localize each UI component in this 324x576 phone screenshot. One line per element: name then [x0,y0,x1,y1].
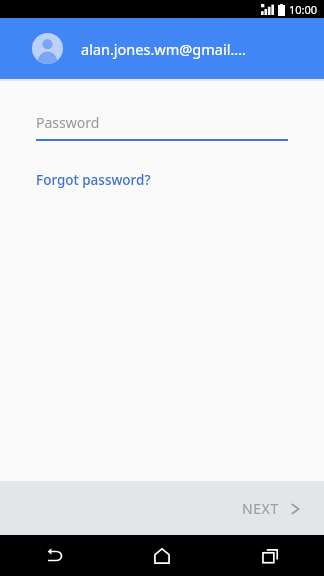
button[interactable]: NEXT [234,491,308,526]
staticText: NEXT [242,499,279,518]
button[interactable]: Recent apps [216,535,324,576]
button[interactable]: Account avatar [0,18,324,79]
button[interactable]: Forgot password? [36,169,151,191]
button[interactable]: Back [0,535,108,576]
staticText: Password [36,113,100,132]
staticText: 10:00 [289,2,318,17]
button[interactable]: Home [108,535,216,576]
other: Account avatar [32,33,63,64]
staticText: alan.jones.wm@gmail.... [81,39,246,59]
button[interactable]: Password [36,113,288,141]
